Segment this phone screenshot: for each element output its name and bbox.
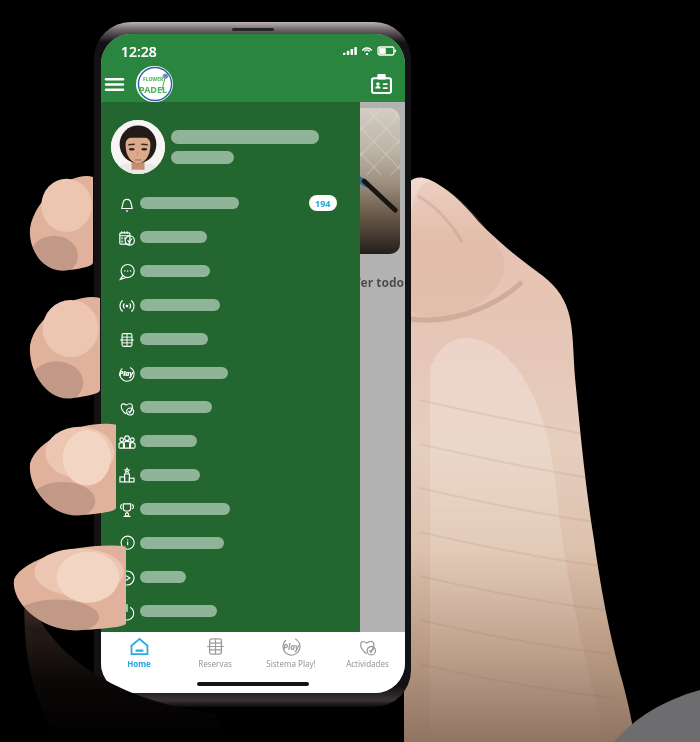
button[interactable] — [118, 458, 337, 492]
button[interactable]: Actividades — [329, 632, 405, 669]
button[interactable]: Flower Padel home — [136, 66, 173, 102]
staticText: Play — [283, 641, 300, 652]
button[interactable] — [118, 424, 337, 458]
button[interactable] — [118, 594, 337, 628]
button[interactable]: Membership card — [367, 70, 395, 98]
button[interactable] — [118, 390, 337, 424]
staticText: Sistema Play! — [266, 658, 316, 669]
button[interactable]: Play — [253, 632, 329, 669]
staticText: PADEL — [139, 83, 168, 95]
button[interactable]: Home — [101, 632, 177, 669]
staticText: Home — [127, 658, 151, 669]
button[interactable]: Open menu — [102, 69, 126, 99]
button[interactable]: 194 — [118, 186, 337, 220]
staticText: Actividades — [346, 658, 389, 669]
staticText: 194 — [315, 197, 331, 209]
button[interactable] — [111, 120, 360, 174]
button[interactable] — [118, 560, 337, 594]
button[interactable] — [118, 220, 337, 254]
button[interactable] — [118, 288, 337, 322]
button[interactable] — [118, 322, 337, 356]
button[interactable]: Reservas — [177, 632, 253, 669]
button[interactable]: Play — [118, 356, 337, 390]
staticText: 12:28 — [121, 42, 157, 61]
staticText: Reservas — [198, 658, 232, 669]
staticText: Play — [119, 369, 134, 379]
staticText: FLOWER — [143, 76, 164, 83]
button[interactable] — [118, 492, 337, 526]
button[interactable] — [118, 254, 337, 288]
staticText: Ver todo — [353, 274, 405, 290]
button[interactable] — [118, 526, 337, 560]
